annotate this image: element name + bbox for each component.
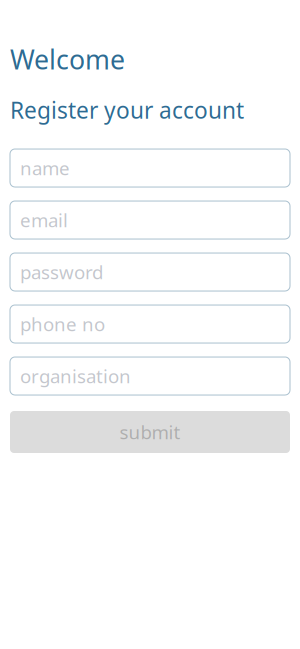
staticText: email	[20, 208, 68, 232]
staticText: submit	[119, 420, 180, 444]
button[interactable]: name	[10, 149, 290, 187]
staticText: organisation	[20, 364, 131, 388]
staticText: password	[20, 260, 103, 284]
staticText: Register your account	[10, 95, 244, 125]
button[interactable]: phone no	[10, 305, 290, 343]
button[interactable]: password	[10, 253, 290, 291]
button[interactable]: organisation	[10, 357, 290, 395]
button[interactable]: submit	[10, 411, 290, 453]
staticText: Welcome	[10, 41, 125, 77]
staticText: phone no	[20, 312, 105, 336]
button[interactable]: email	[10, 201, 290, 239]
staticText: name	[20, 156, 70, 180]
